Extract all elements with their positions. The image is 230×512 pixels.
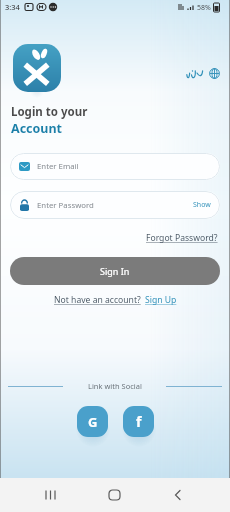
button[interactable]: Show	[193, 200, 211, 210]
staticText: G	[88, 413, 98, 431]
button[interactable]: G	[77, 406, 108, 437]
staticText: Forgot Password?	[146, 232, 218, 244]
button[interactable]: Enter Password	[10, 191, 220, 219]
staticText: Link with Social	[88, 381, 142, 391]
button[interactable]: Enter Email	[10, 153, 220, 180]
staticText: 3:34	[5, 2, 20, 12]
staticText: f	[136, 412, 142, 431]
staticText: Not have an account?	[54, 294, 141, 306]
staticText: 58%	[197, 3, 211, 13]
staticText: Sign Up	[145, 294, 177, 306]
button[interactable]: Sign Up	[145, 294, 177, 306]
staticText: Sign In	[100, 265, 130, 277]
button[interactable]	[186, 68, 220, 79]
staticText: Login to your	[11, 104, 88, 120]
staticText: Show	[193, 200, 211, 210]
button[interactable]: f	[123, 406, 154, 437]
button[interactable]: Sign In	[10, 257, 220, 285]
staticText: Account	[11, 120, 63, 137]
staticText: Enter Password	[37, 200, 94, 211]
staticText: Enter Email	[37, 161, 79, 172]
button[interactable]: Forgot Password?	[146, 232, 218, 244]
